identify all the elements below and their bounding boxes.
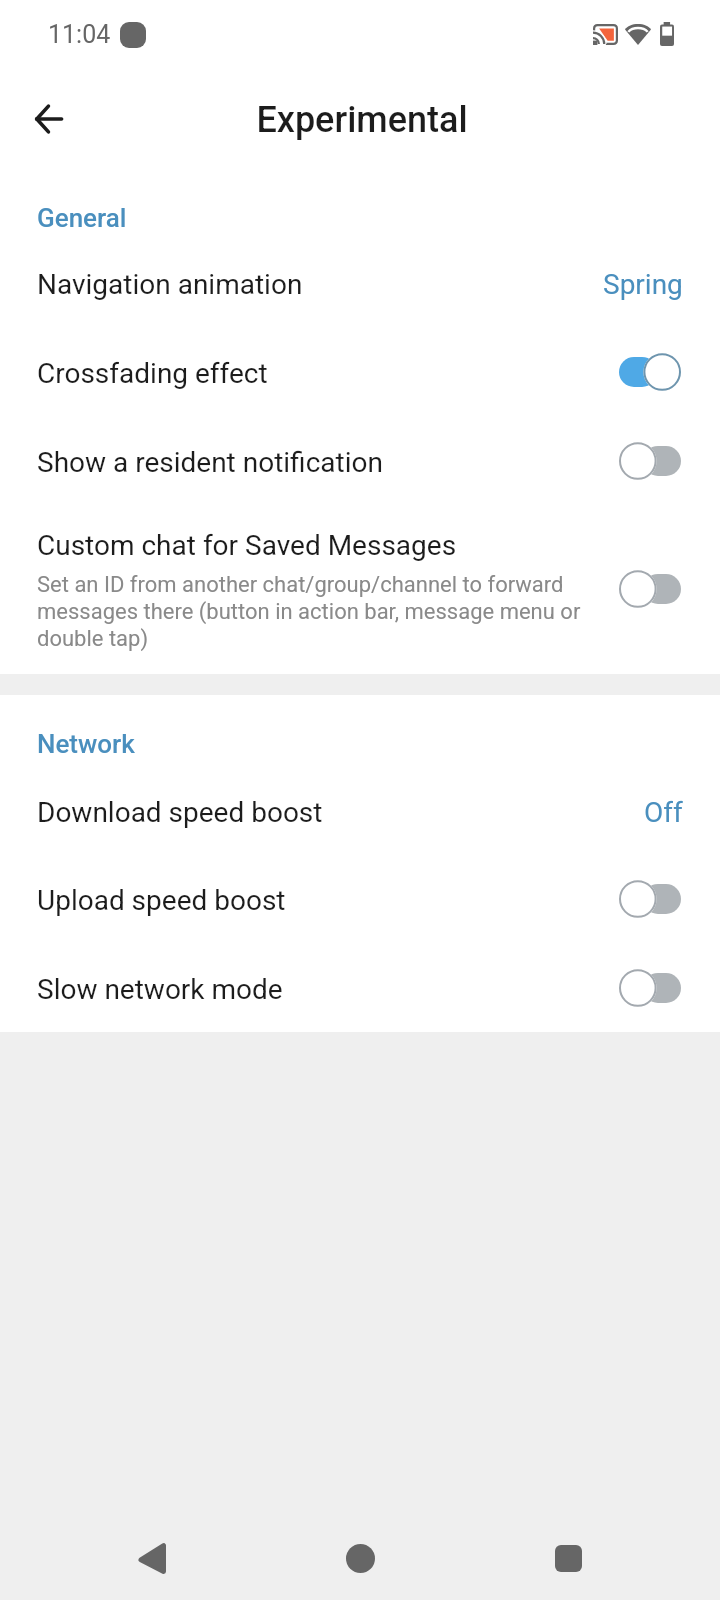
staticText: Upload speed boost: [37, 884, 286, 917]
button[interactable]: Custom chat for Saved Messages: [0, 507, 720, 674]
staticText: Crossfading effect: [37, 357, 268, 390]
button[interactable]: Show a resident notification, off: [619, 441, 681, 481]
staticText: Slow network mode: [37, 973, 283, 1006]
staticText: Set an ID from another chat/group/channe…: [37, 572, 609, 652]
button[interactable]: Upload speed boost: [0, 856, 720, 945]
button[interactable]: Back: [112, 1518, 192, 1598]
button[interactable]: Slow network mode, off: [619, 968, 681, 1008]
staticText: General: [37, 203, 127, 233]
button[interactable]: Home: [320, 1518, 400, 1598]
staticText: Show a resident notification: [37, 446, 383, 479]
staticText: Download speed boost: [37, 796, 323, 829]
button[interactable]: Custom chat for Saved Messages, off: [619, 569, 681, 609]
staticText: Spring: [603, 268, 683, 301]
staticText: Navigation animation: [37, 268, 303, 301]
button[interactable]: Navigation animation: [0, 240, 720, 329]
button[interactable]: Crossfading effect: [0, 329, 720, 418]
button[interactable]: Upload speed boost, off: [619, 879, 681, 919]
staticText: Network: [37, 729, 135, 759]
button[interactable]: Slow network mode: [0, 945, 720, 1034]
button[interactable]: Back: [21, 91, 77, 147]
staticText: Experimental: [256, 99, 468, 141]
button[interactable]: Recents: [528, 1518, 608, 1598]
staticText: Off: [644, 796, 683, 829]
button[interactable]: Download speed boost: [0, 768, 720, 857]
staticText: Custom chat for Saved Messages: [37, 529, 457, 562]
button[interactable]: Crossfading effect, on: [619, 352, 681, 392]
button[interactable]: Show a resident notification: [0, 418, 720, 507]
staticText: 11:04: [48, 20, 111, 49]
